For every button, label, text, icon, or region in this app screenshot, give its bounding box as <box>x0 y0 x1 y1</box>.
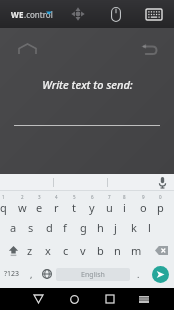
staticText: e <box>36 200 43 215</box>
button[interactable]: h <box>97 216 104 239</box>
staticText: 1 <box>2 194 5 200</box>
button[interactable]: English <box>56 268 130 281</box>
staticText: 9 <box>142 194 145 200</box>
button[interactable]: 4 <box>54 192 59 216</box>
button[interactable]: n <box>114 239 121 262</box>
staticText: v <box>80 243 86 258</box>
staticText: , <box>30 268 33 280</box>
staticText: j <box>114 220 117 235</box>
button[interactable]: v <box>80 239 86 262</box>
staticText: x <box>45 243 51 258</box>
staticText: y <box>89 200 95 215</box>
button[interactable]: 2 <box>18 192 27 216</box>
staticText: 3 <box>38 194 41 200</box>
staticText: ?123 <box>4 269 20 279</box>
button[interactable]: z <box>27 239 33 262</box>
staticText: m <box>131 243 142 258</box>
button[interactable]: Mouse <box>104 2 128 26</box>
button[interactable]: m <box>131 239 142 262</box>
button[interactable]: Voice input <box>150 174 174 191</box>
button[interactable]: . <box>131 262 146 286</box>
button[interactable]: f <box>63 216 67 239</box>
button[interactable]: 5 <box>72 192 76 216</box>
staticText: i <box>123 200 126 215</box>
button[interactable]: Back <box>134 34 164 64</box>
button[interactable]: Home <box>12 34 42 64</box>
staticText: z <box>27 243 33 258</box>
button[interactable]: j <box>114 216 117 239</box>
button[interactable]: x <box>45 239 51 262</box>
staticText: u <box>106 200 113 215</box>
button[interactable] <box>108 174 150 191</box>
button[interactable]: 6 <box>89 192 95 216</box>
staticText: g <box>80 220 87 235</box>
staticText: w <box>18 200 27 215</box>
button[interactable]: 7 <box>106 192 113 216</box>
button[interactable]: l <box>148 216 151 239</box>
button[interactable]: c <box>63 239 69 262</box>
button[interactable]: ?123 <box>0 262 24 286</box>
button[interactable]: Backspace <box>148 239 174 262</box>
button[interactable]: a <box>10 216 17 239</box>
staticText: WE <box>11 9 24 20</box>
button[interactable]: Back <box>20 288 56 310</box>
button[interactable]: s <box>28 216 34 239</box>
button[interactable]: 0 <box>157 192 164 216</box>
button[interactable]: 1 <box>0 192 7 216</box>
button[interactable]: 3 <box>36 192 43 216</box>
staticText: c <box>63 243 69 258</box>
staticText: 0 <box>159 194 162 200</box>
button[interactable]: Shift <box>0 239 27 262</box>
button[interactable]: 8 <box>123 192 126 216</box>
staticText: l <box>148 220 151 235</box>
staticText: b <box>97 243 104 258</box>
staticText: English <box>81 270 105 280</box>
button[interactable]: , <box>24 262 39 286</box>
button[interactable]: d <box>46 216 53 239</box>
staticText: 4 <box>55 194 58 200</box>
staticText: 2 <box>21 194 24 200</box>
staticText: p <box>157 200 164 215</box>
button[interactable] <box>54 174 107 191</box>
staticText: 5 <box>73 194 76 200</box>
button[interactable]: 9 <box>140 192 147 216</box>
staticText: h <box>97 220 104 235</box>
button[interactable]: Recent apps <box>92 288 128 310</box>
button[interactable]: Home <box>56 288 92 310</box>
staticText: s <box>28 220 34 235</box>
button[interactable]: Direction pad <box>66 2 90 26</box>
staticText: 7 <box>108 194 111 200</box>
button[interactable]: k <box>131 216 137 239</box>
button[interactable] <box>14 114 160 126</box>
staticText: 8 <box>123 194 126 200</box>
staticText: .control <box>24 9 53 20</box>
staticText: t <box>72 200 76 215</box>
staticText: Write text to send: <box>42 77 133 92</box>
button[interactable]: g <box>80 216 87 239</box>
staticText: r <box>54 200 59 215</box>
staticText: f <box>63 220 67 235</box>
button[interactable] <box>0 174 53 191</box>
staticText: n <box>114 243 121 258</box>
staticText: k <box>131 220 137 235</box>
staticText: 6 <box>91 194 94 200</box>
staticText: q <box>0 200 7 215</box>
staticText: d <box>46 220 53 235</box>
button[interactable]: WE <box>9 5 55 24</box>
button[interactable]: b <box>97 239 104 262</box>
button[interactable]: Send <box>146 262 174 286</box>
staticText: . <box>137 268 140 280</box>
button[interactable]: Switch keyboard <box>128 288 160 310</box>
button[interactable]: Keyboard <box>142 2 166 26</box>
staticText: a <box>10 220 17 235</box>
staticText: o <box>140 200 147 215</box>
button[interactable]: Change language <box>39 262 55 286</box>
